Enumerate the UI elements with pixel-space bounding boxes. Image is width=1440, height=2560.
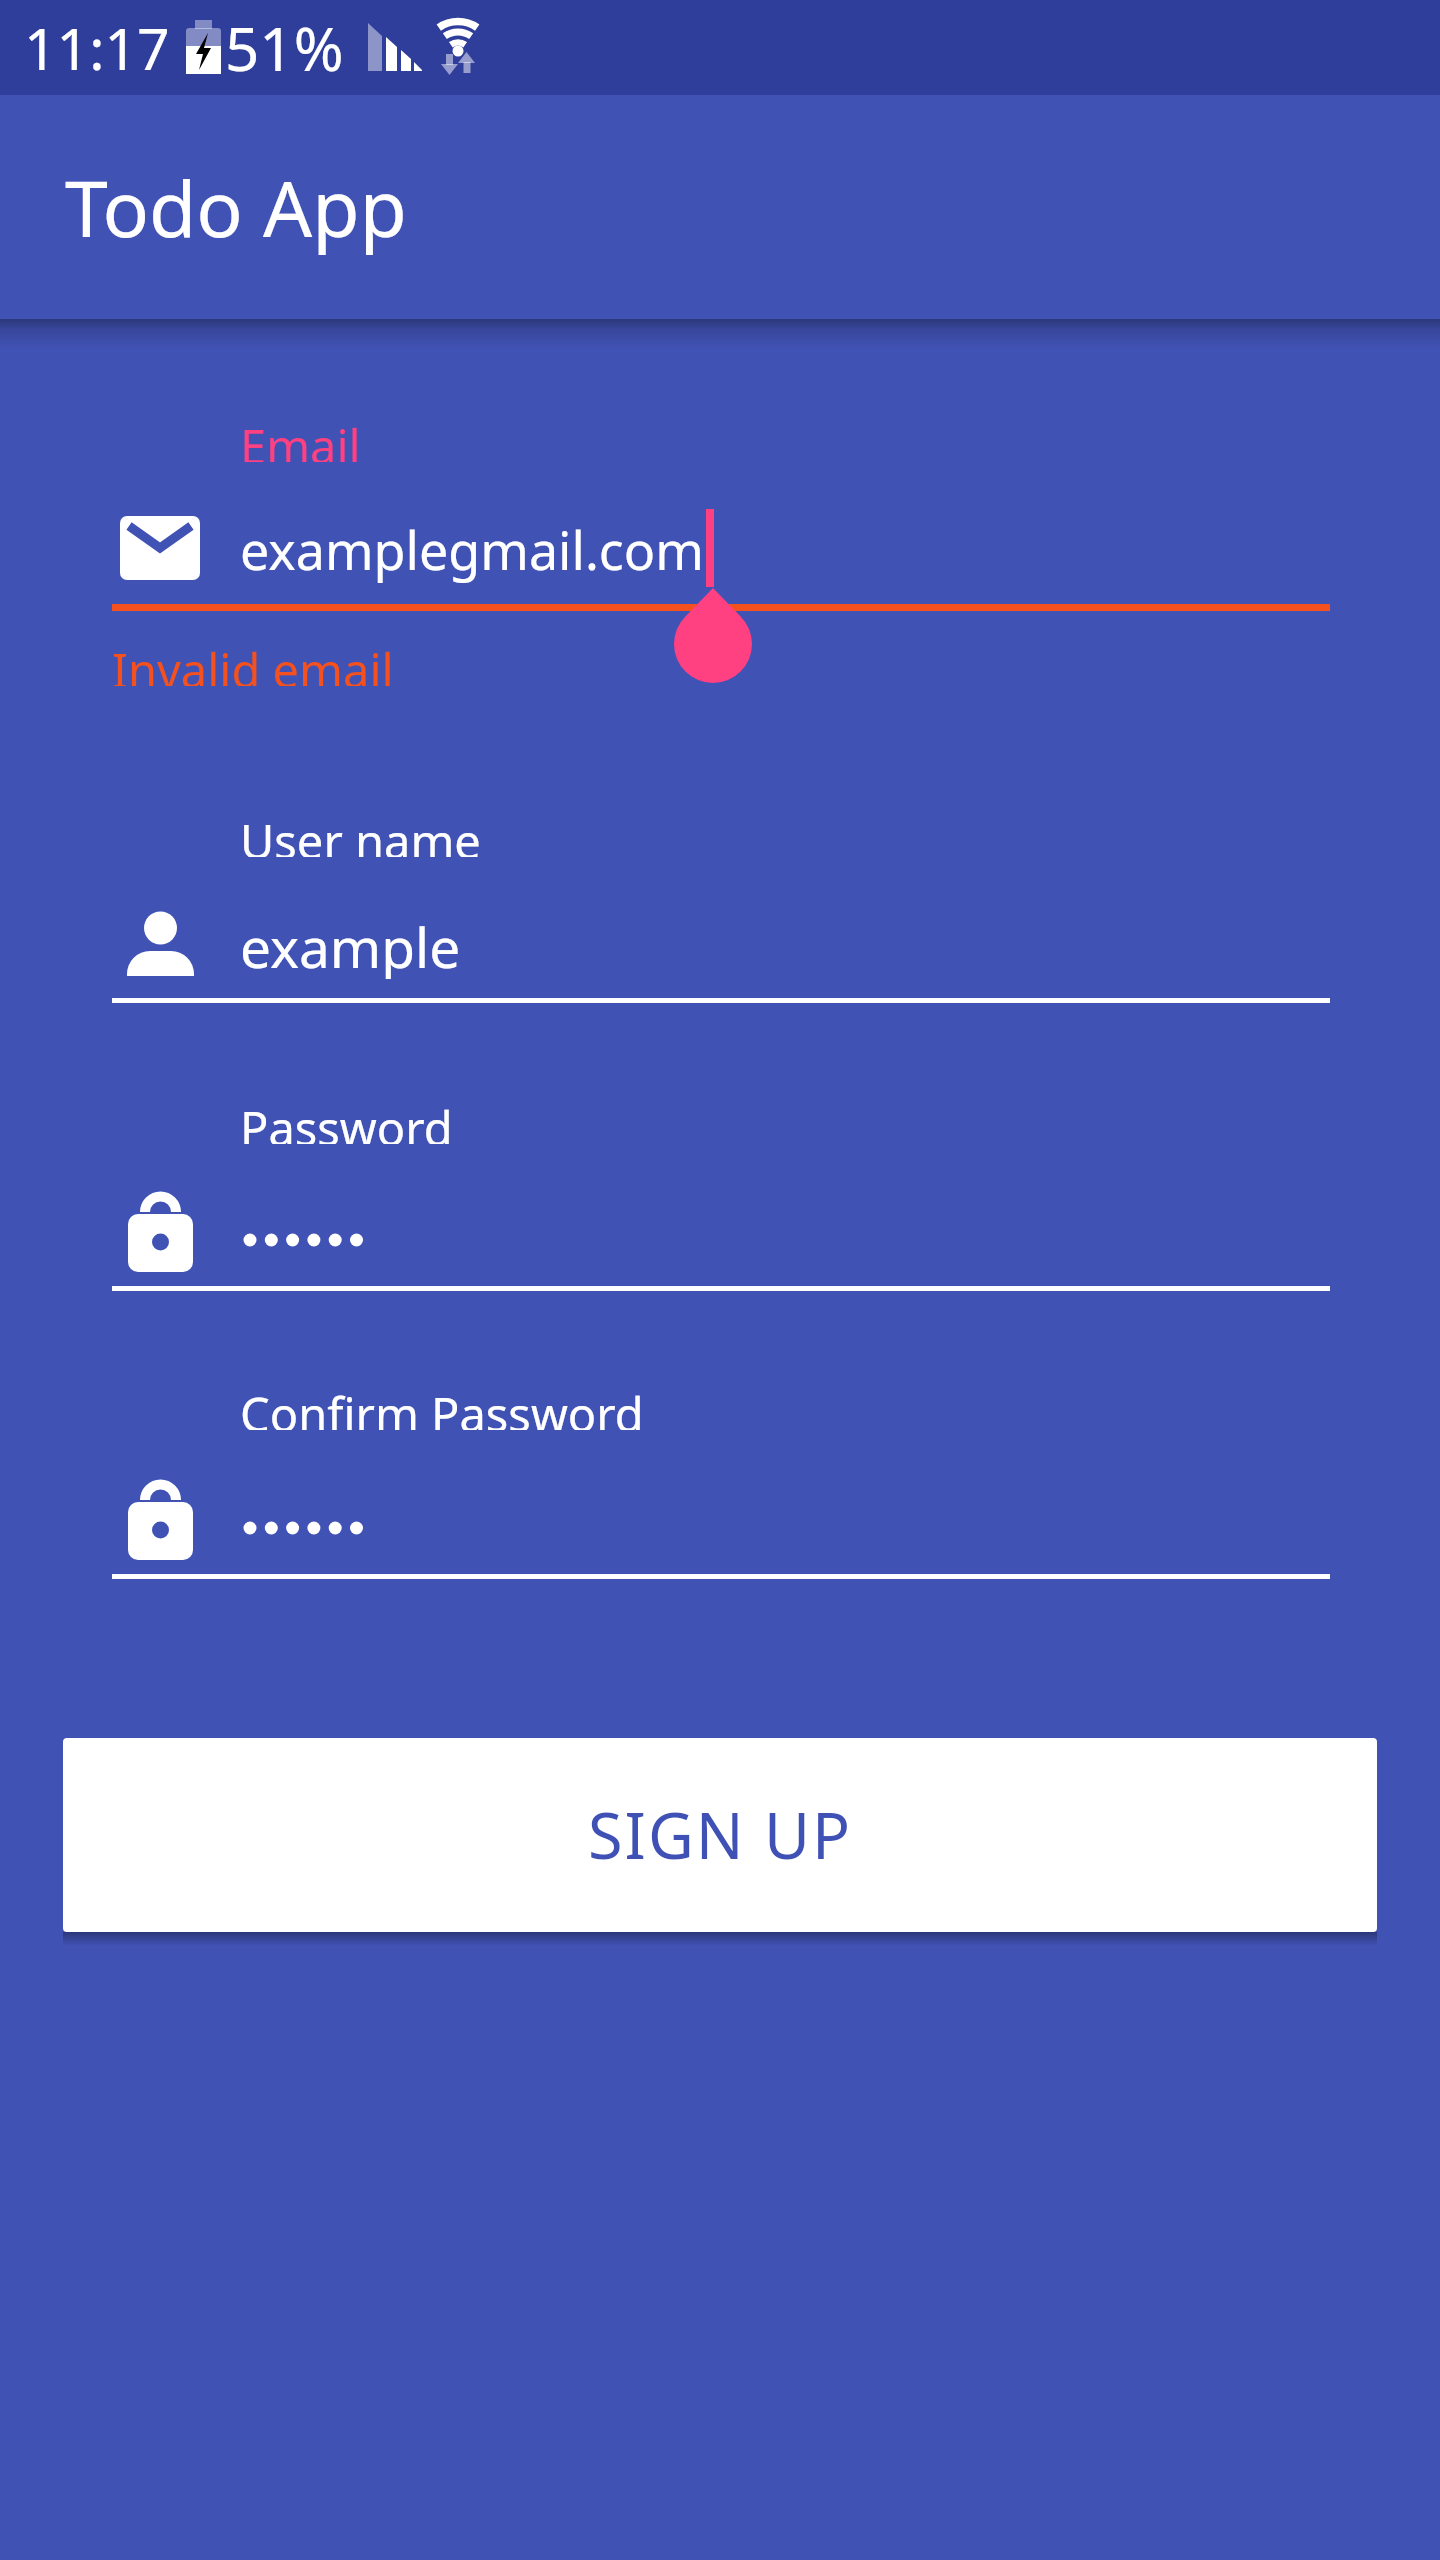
button[interactable]: [112, 1186, 1330, 1291]
button[interactable]: SIGN UP: [63, 1738, 1377, 1932]
staticText: example: [240, 909, 461, 979]
staticText: 51%: [225, 7, 344, 89]
staticText: Todo App: [65, 155, 407, 260]
staticText: User name: [240, 809, 481, 857]
button[interactable]: [112, 495, 1330, 612]
button[interactable]: [112, 900, 1330, 1003]
staticText: examplegmail.com: [240, 514, 704, 584]
staticText: Confirm Password: [240, 1382, 644, 1430]
staticText: Email: [240, 414, 361, 462]
button[interactable]: [112, 1474, 1330, 1579]
staticText: Password: [240, 1096, 453, 1144]
staticText: 11:17: [24, 9, 170, 87]
staticText: SIGN UP: [588, 1792, 853, 1878]
staticText: Invalid email: [112, 638, 394, 686]
